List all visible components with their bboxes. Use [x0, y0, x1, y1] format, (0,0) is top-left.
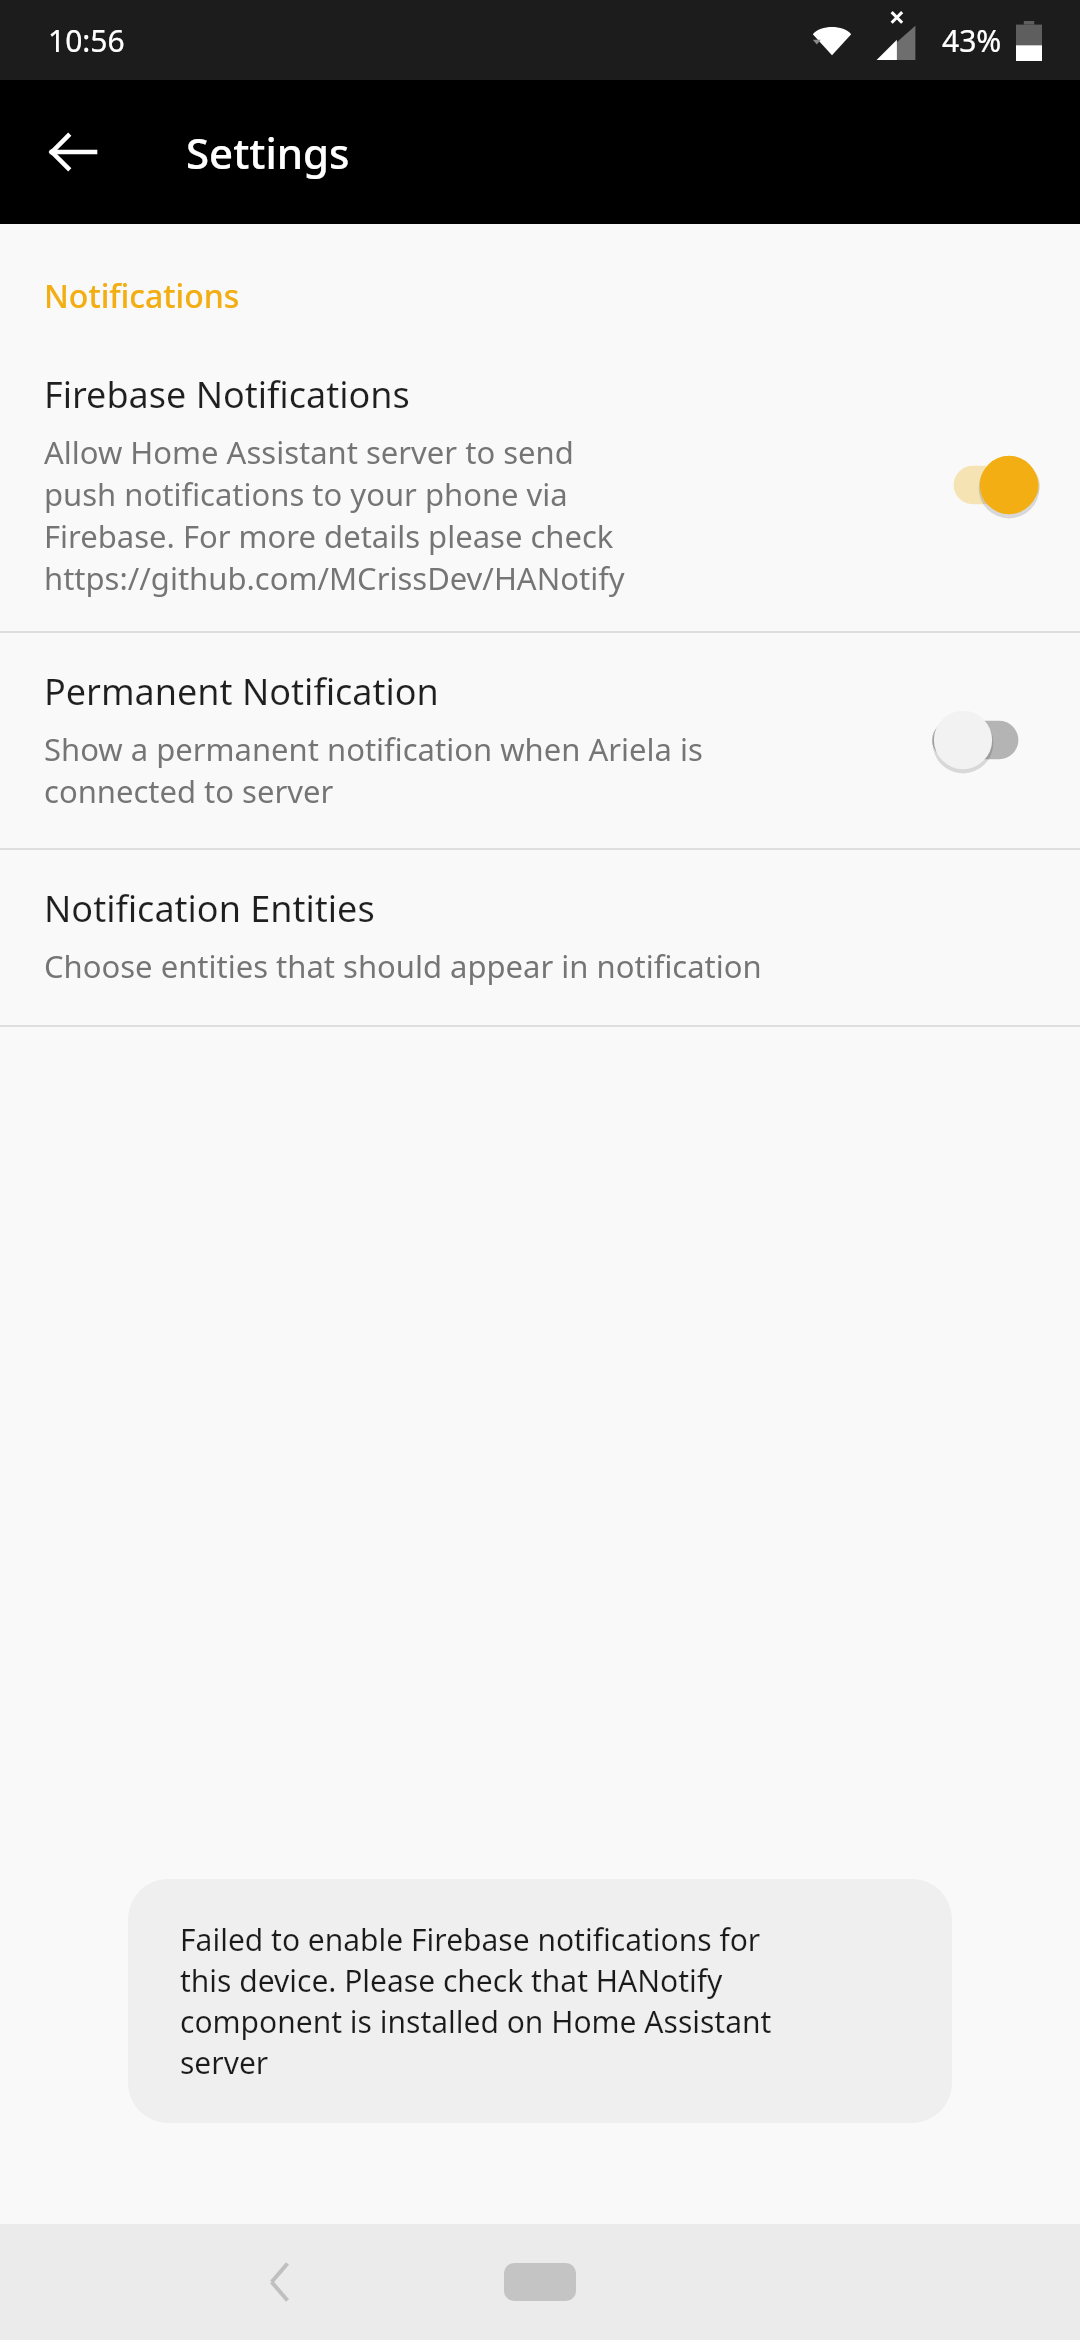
- staticText: Settings: [186, 124, 350, 181]
- staticText: this device. Please check that HANotify: [180, 1960, 723, 2001]
- staticText: Firebase. For more details please check: [44, 515, 614, 557]
- staticText: 10:56: [48, 20, 125, 61]
- button[interactable]: Toggle on: [932, 454, 1040, 516]
- button[interactable]: Notification Entities: [0, 850, 1080, 1025]
- button[interactable]: Permanent Notification: [0, 633, 1080, 848]
- staticText: push notifications to your phone via: [44, 473, 568, 515]
- staticText: Allow Home Assistant server to send: [44, 431, 574, 473]
- button[interactable]: Firebase Notifications: [0, 340, 1080, 631]
- button[interactable]: Toggle off: [932, 709, 1040, 771]
- staticText: Notifications: [44, 274, 240, 318]
- staticText: connected to server: [44, 770, 334, 812]
- staticText: server: [180, 2042, 269, 2083]
- staticText: Notification Entities: [44, 884, 375, 933]
- button[interactable]: Home: [490, 2254, 590, 2310]
- button[interactable]: Back: [240, 2242, 320, 2322]
- staticText: component is installed on Home Assistant: [180, 2001, 772, 2042]
- button[interactable]: Back: [28, 107, 118, 197]
- staticText: Failed to enable Firebase notifications …: [180, 1919, 761, 1960]
- staticText: Permanent Notification: [44, 667, 439, 716]
- staticText: Firebase Notifications: [44, 370, 410, 419]
- staticText: Choose entities that should appear in no…: [44, 945, 762, 987]
- staticText: https://github.com/MCrissDev/HANotify: [44, 557, 625, 599]
- staticText: 43%: [942, 20, 1002, 61]
- staticText: Show a permanent notification when Ariel…: [44, 728, 703, 770]
